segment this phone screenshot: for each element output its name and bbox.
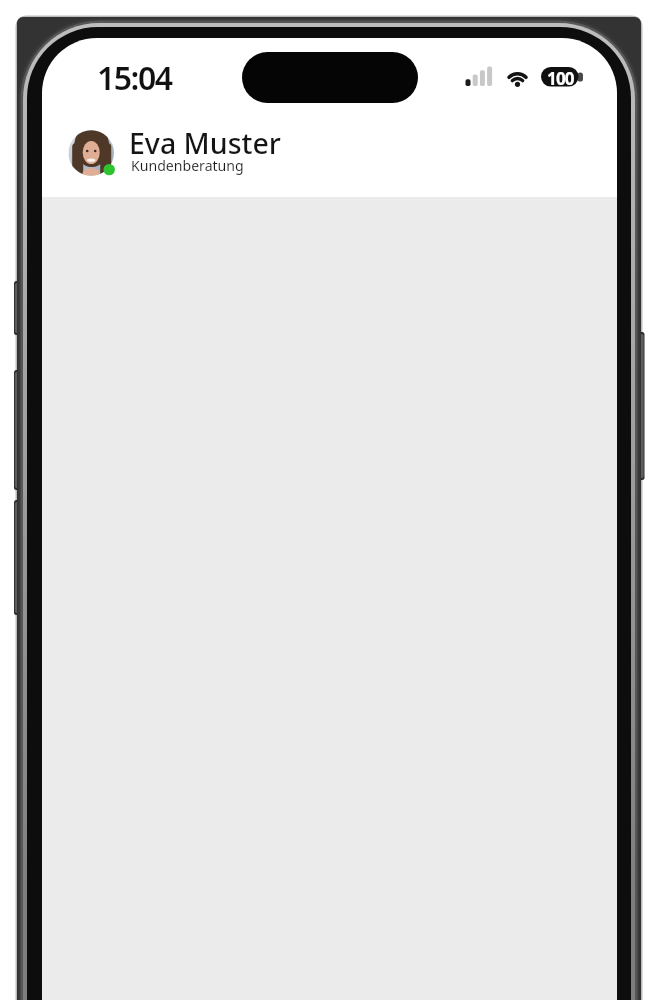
staticText: Kundenberatung (131, 156, 244, 175)
staticText: 100 (547, 67, 574, 87)
staticText: Eva Muster (129, 124, 281, 163)
staticText: 15:04 (97, 56, 172, 100)
